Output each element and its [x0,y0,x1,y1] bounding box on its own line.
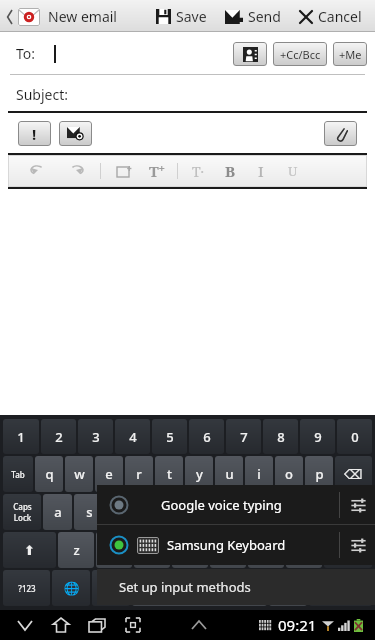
button[interactable]: 7 [226,419,261,454]
button[interactable]: 3 [78,419,113,454]
button[interactable]: Set up input methods [97,569,375,605]
button[interactable]: x [96,532,132,568]
button[interactable]: d [106,494,136,530]
button[interactable]: I [258,161,264,181]
button[interactable]: Cancel [294,7,367,26]
button[interactable]: 4 [115,419,150,454]
button[interactable]: u [215,456,243,492]
staticText: 9 [314,428,322,446]
button[interactable]: Tracking [59,121,92,146]
button[interactable]: 6 [189,419,224,454]
staticText: Tab [11,469,25,480]
button[interactable]: 2 [41,419,76,454]
button[interactable]: c [134,532,170,568]
staticText: ⬆ [343,543,354,558]
button[interactable]: U [288,162,298,180]
button[interactable]: ⬆ [3,532,56,568]
button[interactable]: Screen capture [120,612,146,638]
button[interactable]: 5 [152,419,187,454]
staticText: a [54,503,62,521]
button[interactable]: h [202,494,232,530]
button[interactable]: ⌫ [335,456,372,492]
button[interactable]: Attach [324,121,357,146]
button[interactable]: Contacts [233,42,267,66]
button[interactable]: ;- [92,570,130,606]
button[interactable]: n [248,532,284,568]
button[interactable]: 9 [300,419,335,454]
button[interactable]: Home [48,612,74,638]
button[interactable]: w [65,456,93,492]
button[interactable]: Redo [64,158,90,184]
button[interactable]: +Me [333,42,367,66]
staticText: k [277,503,285,521]
staticText: u [225,465,234,483]
button[interactable]: a [43,494,72,530]
button[interactable] [132,570,267,606]
staticText: j [247,503,251,521]
staticText: Samsung Keyboard [167,536,286,554]
button[interactable]: t [155,456,183,492]
staticText: o [285,465,293,483]
staticText: 2 [55,428,63,446]
button[interactable]: 0 [337,419,372,454]
staticText: Set up input methods [119,578,251,596]
button[interactable]: y [185,456,213,492]
button[interactable]: Select [97,525,375,565]
staticText: Google voice typing [161,496,282,514]
button[interactable]: Undo [24,158,50,184]
button[interactable]: f [138,494,168,530]
button[interactable]: g [170,494,200,530]
button[interactable]: Expand [186,612,212,638]
button[interactable]: Caps Lock [3,494,41,530]
button[interactable]: r [125,456,153,492]
button[interactable]: Recent apps [84,612,110,638]
button[interactable]: Back [4,7,119,26]
button[interactable]: l [298,494,328,530]
button[interactable]: q [35,456,63,492]
button[interactable]: Select [97,485,375,525]
staticText: r [136,465,142,483]
button[interactable]: e [95,456,123,492]
staticText: Caps Lock [13,501,32,523]
staticText: h [213,503,222,521]
button[interactable]: m [286,532,322,568]
button[interactable]: Send [220,7,286,26]
button[interactable]: k [266,494,296,530]
button[interactable]: v [172,532,208,568]
button[interactable]: 1 [3,419,39,454]
other: Save [156,9,171,24]
button[interactable]: z [58,532,94,568]
staticText: ↵ [346,505,357,520]
button[interactable]: . [269,570,307,606]
button[interactable]: T⁺ [149,161,165,181]
staticText: d [117,503,126,521]
button[interactable]: ?123 [3,570,50,606]
button[interactable]: ⬆ [324,532,372,568]
button[interactable]: p [305,456,333,492]
staticText: t [167,465,172,483]
button[interactable]: ↵ [330,494,372,530]
button[interactable]: 🌐 [52,570,90,606]
button[interactable]: B [225,161,236,181]
staticText: 09:21 [278,615,317,635]
button[interactable]: b [210,532,246,568]
staticText: y [196,465,203,483]
staticText: p [315,465,324,483]
button[interactable]: s [74,494,104,530]
button[interactable]: 8 [263,419,298,454]
button[interactable]: Tab [3,456,33,492]
button[interactable]: Hide keyboard [12,612,38,638]
button[interactable]: T⸱ [192,162,205,181]
button[interactable]: Insert image [111,158,137,184]
button[interactable]: +Cc/Bcc [273,42,327,66]
button[interactable]: o [275,456,303,492]
button[interactable]: Save [151,7,212,26]
staticText: 7 [240,428,248,446]
button[interactable]: Priority [18,121,51,146]
button[interactable]: j [234,494,264,530]
button[interactable]: i [245,456,273,492]
staticText: Subject: [16,85,68,104]
